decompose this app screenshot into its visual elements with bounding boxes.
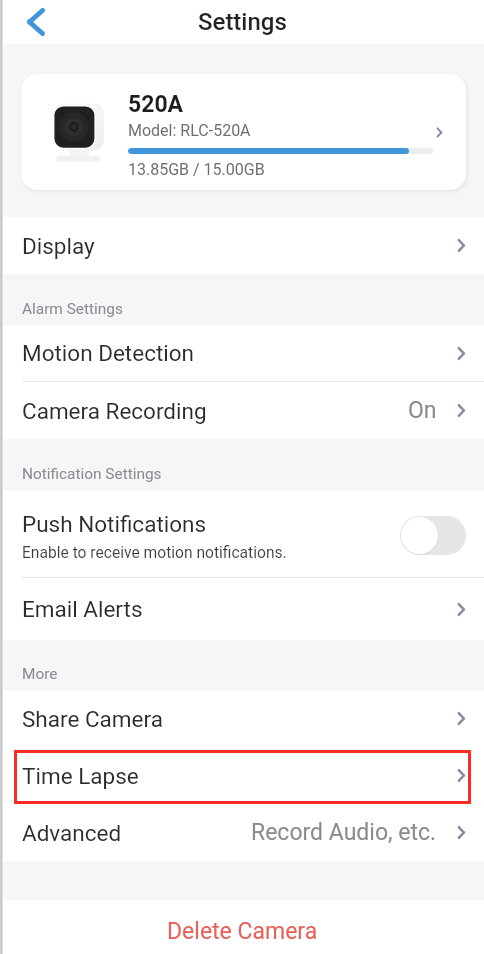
button[interactable]: Advanced [0, 804, 484, 861]
staticText: Notification Settings [22, 465, 162, 483]
staticText: On [408, 397, 437, 424]
staticText: Share Camera [22, 706, 163, 732]
button[interactable]: Share Camera [0, 690, 484, 747]
staticText: Email Alerts [22, 596, 143, 622]
staticText: 520A [128, 91, 184, 118]
button[interactable]: Back [0, 0, 72, 44]
staticText: Alarm Settings [22, 300, 123, 318]
button[interactable]: Motion Detection [0, 325, 484, 382]
staticText: 13.85GB / 15.00GB [128, 160, 265, 179]
button[interactable]: Push Notifications [0, 490, 484, 578]
staticText: Camera Recording [22, 398, 207, 424]
staticText: Advanced [22, 820, 122, 846]
staticText: Time Lapse [22, 763, 139, 789]
staticText: Motion Detection [22, 340, 195, 366]
staticText: Model: RLC-520A [128, 121, 251, 140]
staticText: Settings [198, 8, 287, 36]
button[interactable]: Camera Recording [0, 382, 484, 439]
button[interactable]: Push notifications toggle [400, 516, 466, 555]
button[interactable]: Time Lapse [0, 747, 484, 804]
staticText: Push Notifications [22, 511, 207, 537]
staticText: More [22, 665, 58, 683]
button[interactable]: Email Alerts [0, 578, 484, 640]
button[interactable]: Delete Camera [147, 902, 338, 953]
staticText: Record Audio, etc. [251, 819, 437, 846]
button[interactable]: Display [0, 217, 484, 274]
staticText: Enable to receive motion notifications. [22, 544, 287, 562]
button[interactable]: 520A [21, 74, 466, 190]
staticText: Display [22, 233, 95, 259]
